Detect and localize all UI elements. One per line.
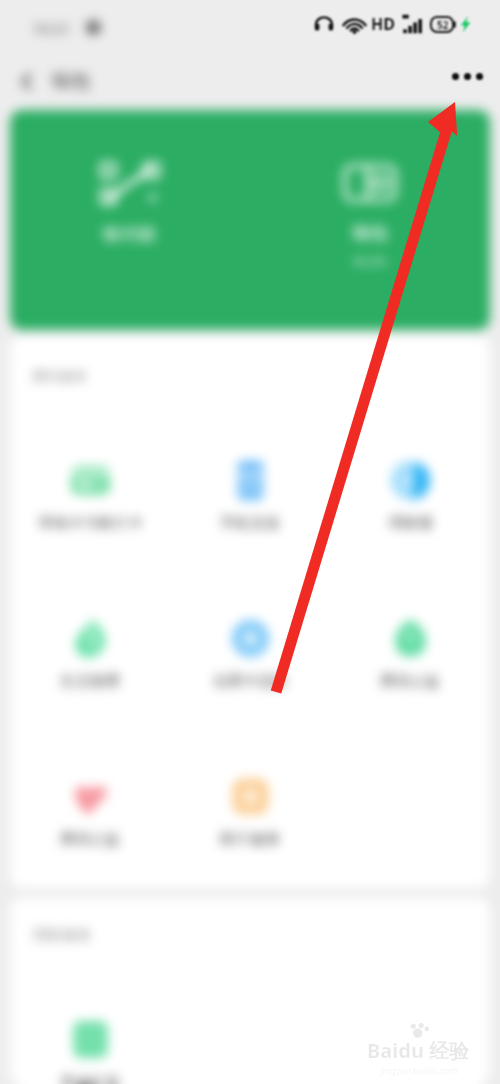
staticText: 收付款 [103,223,157,246]
staticText: ¥0.00 [353,252,387,270]
staticText: Baidu 经验 [367,1037,470,1064]
staticText: HD [371,13,395,35]
button[interactable]: Back [4,59,48,103]
button[interactable]: 黄金红包 [10,1002,170,1084]
staticText: 52 [437,18,449,32]
staticText: 生活缴费 [60,672,120,691]
staticText: 理财服务 [32,926,92,945]
button[interactable]: 腾讯公益 [10,759,170,888]
button[interactable]: 手机充值 [170,443,330,601]
staticText: 腾讯服务 [32,368,88,386]
staticText: 钱包 [352,222,388,245]
button[interactable]: More options [444,53,490,99]
button[interactable]: 理财通 [330,443,490,601]
staticText: 信用卡还款 [213,672,288,691]
staticText: 理财通 [388,514,433,533]
staticText: 10:21 [32,18,71,38]
button[interactable]: 腾讯公益 [330,601,490,759]
button[interactable]: 零钱卡与银行卡 [10,443,170,601]
staticText: 手机充值 [220,514,280,533]
staticText: 黄金红包 [60,1073,120,1084]
staticText: 腾讯公益 [380,672,440,691]
button[interactable]: 钱包 [250,110,490,330]
staticText: 医疗健康 [220,830,280,849]
button[interactable]: 医疗健康 [170,759,330,888]
button[interactable]: 收付款 [10,110,250,330]
staticText: 钱包 [52,69,90,93]
button[interactable]: 信用卡还款 [170,601,330,759]
staticText: 腾讯公益 [60,830,120,849]
button[interactable]: 生活缴费 [10,601,170,759]
staticText: 零钱卡与银行卡 [38,514,143,533]
